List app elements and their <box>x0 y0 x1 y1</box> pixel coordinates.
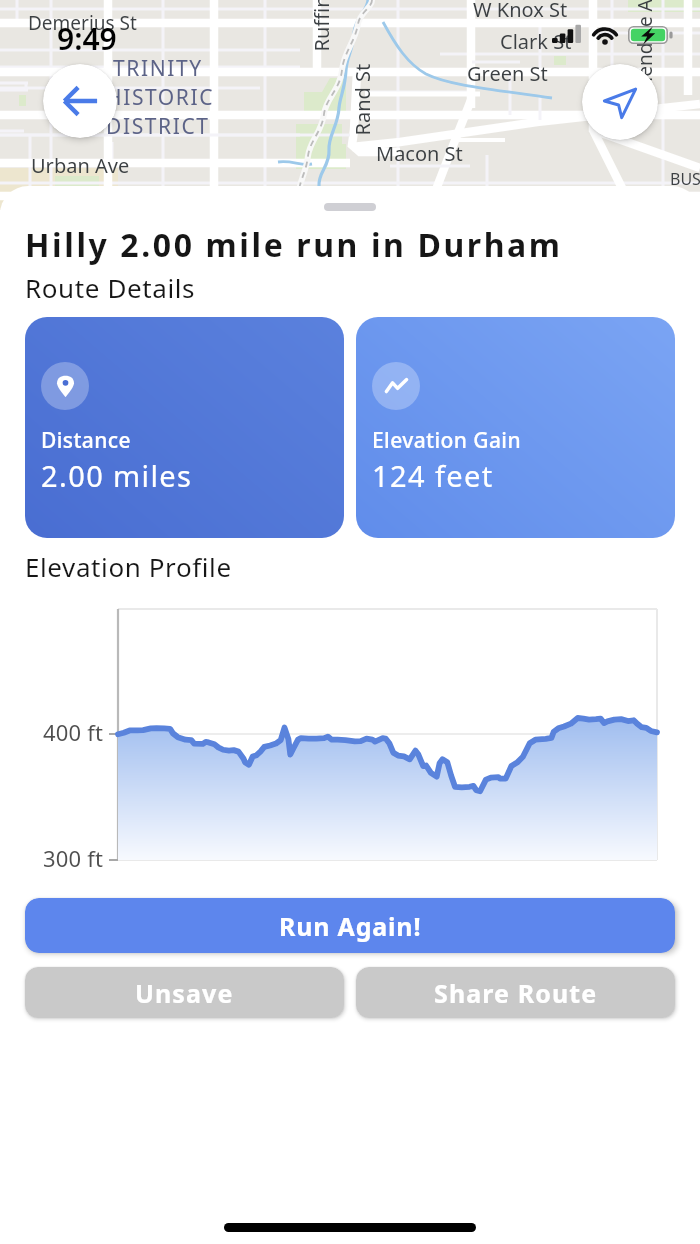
staticText: Rand St <box>348 63 375 135</box>
staticText: Green St <box>467 60 548 87</box>
staticText: 400 ft <box>43 717 104 747</box>
button[interactable]: Share Route <box>356 967 675 1018</box>
staticText: Hilly 2.00 mile run in Durham <box>25 223 563 267</box>
staticText: Glendale Ave <box>631 0 657 95</box>
button[interactable]: Run Again! <box>25 898 675 953</box>
staticText: 9:49 <box>57 18 117 59</box>
button[interactable]: My location <box>582 64 658 140</box>
staticText: BUS <box>670 168 700 190</box>
staticText: Clark St <box>500 28 572 55</box>
staticText: W Knox St <box>473 0 568 23</box>
staticText: Distance <box>41 426 132 455</box>
staticText: Demerius St <box>28 10 137 36</box>
staticText: Ruffin St <box>307 0 334 51</box>
staticText: Elevation Gain <box>372 426 521 455</box>
staticText: Share Route <box>434 976 598 1010</box>
staticText: Macon St <box>376 140 463 167</box>
staticText: 2.00 miles <box>41 456 193 495</box>
button[interactable]: Unsave <box>25 967 344 1018</box>
staticText: Elevation Profile <box>25 549 232 584</box>
staticText: Run Again! <box>279 909 422 943</box>
button[interactable]: Back <box>43 64 117 138</box>
staticText: 300 ft <box>43 843 104 873</box>
staticText: Unsave <box>135 976 234 1010</box>
staticText: Urban Ave <box>31 152 130 179</box>
staticText: DISTRICT <box>106 112 210 141</box>
staticText: TRINITY <box>113 54 203 83</box>
staticText: HISTORIC <box>106 83 215 112</box>
button[interactable]: Distance <box>25 317 344 538</box>
button[interactable]: Elevation Gain <box>356 317 675 538</box>
staticText: Route Details <box>25 270 196 305</box>
staticText: 124 feet <box>372 456 494 495</box>
